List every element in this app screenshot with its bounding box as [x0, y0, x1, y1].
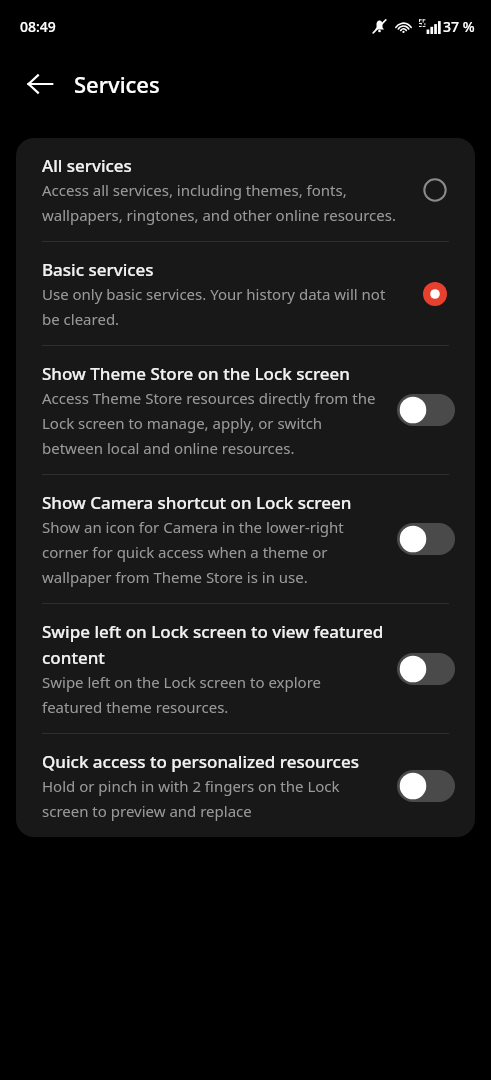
button[interactable]: Show Theme Store on the Lock screen: [16, 346, 475, 474]
button[interactable]: Unselected option: [413, 168, 457, 212]
staticText: Use only basic services. Your history da…: [42, 284, 403, 329]
button[interactable]: Show Camera shortcut on Lock screen: [16, 475, 475, 603]
button[interactable]: Toggle, off: [395, 649, 457, 689]
button[interactable]: Selected option: [413, 272, 457, 316]
staticText: Access all services, including themes, f…: [42, 180, 403, 225]
button[interactable]: Quick access to personalized resources: [16, 734, 475, 837]
button[interactable]: Toggle, off: [395, 390, 457, 430]
staticText: Show Theme Store on the Lock screen: [42, 362, 350, 385]
staticText: Basic services: [42, 258, 154, 281]
button[interactable]: All services: [16, 138, 475, 241]
staticText: All services: [42, 154, 132, 177]
staticText: Swipe left on Lock screen to view featur…: [42, 620, 385, 669]
button[interactable]: Back: [12, 56, 68, 112]
staticText: Quick access to personalized resources: [42, 750, 359, 773]
button[interactable]: Swipe left on Lock screen to view featur…: [16, 604, 475, 733]
staticText: Hold or pinch in with 2 fingers on the L…: [42, 776, 385, 821]
button[interactable]: Toggle, off: [395, 766, 457, 806]
staticText: 08:49: [20, 17, 56, 36]
staticText: Swipe left on the Lock screen to explore…: [42, 672, 385, 717]
staticText: Show an icon for Camera in the lower-rig…: [42, 517, 385, 587]
button[interactable]: Basic services: [16, 242, 475, 345]
staticText: Show Camera shortcut on Lock screen: [42, 491, 352, 514]
staticText: Services: [74, 69, 160, 99]
button[interactable]: Toggle, off: [395, 519, 457, 559]
staticText: 37 %: [443, 17, 475, 36]
staticText: Access Theme Store resources directly fr…: [42, 388, 385, 458]
